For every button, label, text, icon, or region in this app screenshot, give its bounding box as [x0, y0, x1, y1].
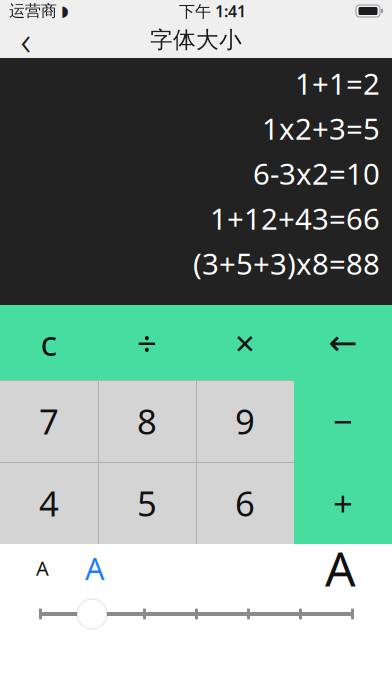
staticText: ‹ — [20, 13, 31, 66]
button[interactable]: ÷ — [98, 305, 196, 380]
button[interactable]: × — [196, 305, 294, 380]
button[interactable]: ← — [294, 305, 392, 380]
staticText: 下午 1:41 — [179, 0, 246, 22]
button[interactable]: 4 — [0, 462, 98, 544]
button[interactable]: 5 — [98, 462, 196, 544]
staticText: (3+5+3)x8=88 — [193, 244, 380, 283]
staticText: ÷ — [137, 319, 157, 365]
staticText: A — [36, 555, 49, 581]
staticText: 6-3x2=10 — [253, 154, 380, 193]
staticText: 7 — [39, 398, 59, 444]
staticText: + — [333, 480, 353, 526]
staticText: 字体大小 — [150, 26, 242, 54]
button[interactable]: + — [294, 462, 392, 544]
staticText: 4 — [39, 480, 59, 526]
button[interactable]: 6 — [196, 462, 294, 544]
staticText: 6 — [235, 480, 255, 526]
staticText: ← — [328, 323, 357, 362]
staticText: 1+12+43=66 — [210, 199, 380, 238]
staticText: 9 — [235, 398, 255, 444]
button[interactable]: Font size slider — [77, 599, 107, 629]
button[interactable]: 7 — [0, 380, 98, 462]
button[interactable]: 8 — [98, 380, 196, 462]
staticText: × — [235, 319, 255, 365]
button[interactable]: 9 — [196, 380, 294, 462]
staticText: c — [40, 319, 57, 365]
staticText: 5 — [137, 480, 157, 526]
button[interactable]: − — [294, 380, 392, 462]
staticText: A — [325, 536, 356, 600]
staticText: − — [333, 398, 353, 444]
staticText: ◗ — [61, 3, 69, 19]
staticText: 运营商 — [9, 1, 57, 21]
staticText: 8 — [137, 398, 157, 444]
button[interactable]: c — [0, 305, 98, 380]
button[interactable]: Back — [0, 22, 52, 58]
staticText: A — [85, 548, 105, 588]
staticText: 1x2+3=5 — [262, 109, 380, 148]
staticText: 1+1=2 — [295, 64, 380, 103]
